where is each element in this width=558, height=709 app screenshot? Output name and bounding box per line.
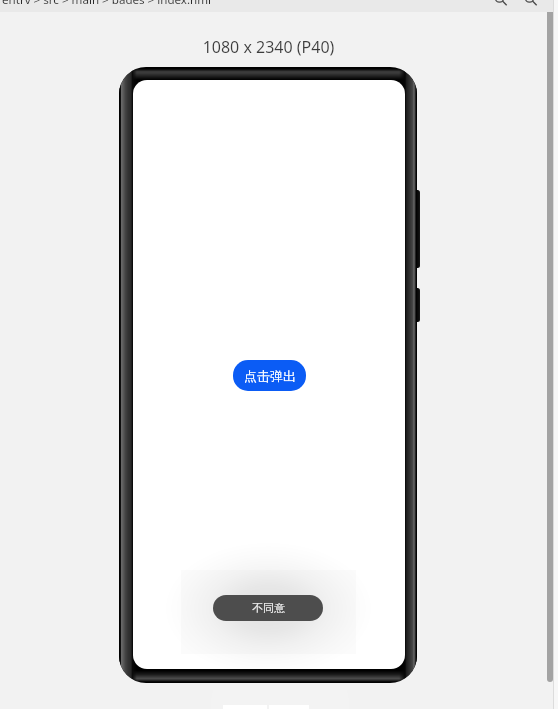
staticText: 点击弹出 [244, 368, 296, 384]
button[interactable]: 不同意 [213, 595, 323, 621]
button[interactable]: 点击弹出 [233, 360, 306, 391]
staticText: entry > src > main > pages > index.hml [2, 0, 212, 4]
staticText: 不同意 [252, 601, 285, 615]
staticText: 1080 x 2340 (P40) [0, 36, 537, 58]
